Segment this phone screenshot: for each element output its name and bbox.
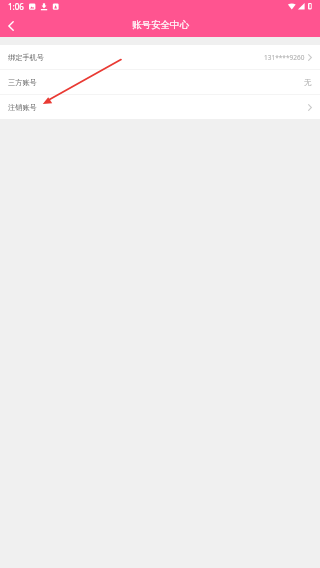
staticText: 1:06 [8,1,24,12]
button[interactable]: 三方账号 [0,70,320,94]
staticText: 无 [304,78,312,87]
staticText: 三方账号 [8,78,37,87]
staticText: 注销账号 [8,103,37,112]
staticText: 账号安全中心 [132,19,189,31]
button[interactable]: 注销账号 [0,95,320,119]
button[interactable]: 绑定手机号 [0,45,320,69]
staticText: 131****9260 [264,53,305,62]
button[interactable]: 返回 [0,15,22,37]
staticText: 绑定手机号 [8,53,44,62]
